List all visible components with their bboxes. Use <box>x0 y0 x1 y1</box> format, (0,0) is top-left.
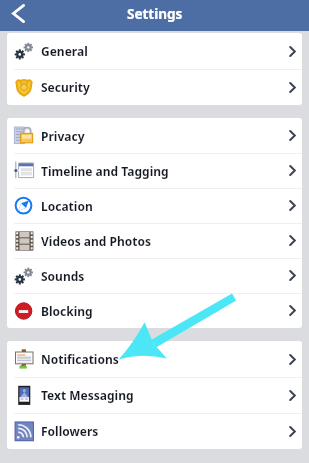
staticText: Sounds <box>41 268 85 284</box>
staticText: Notifications <box>41 351 119 367</box>
staticText: Timeline and Tagging <box>41 163 169 179</box>
button[interactable]: Location <box>7 188 302 223</box>
button[interactable]: Back <box>0 0 36 31</box>
staticText: Text Messaging <box>41 387 134 403</box>
button[interactable]: Followers <box>7 413 302 449</box>
staticText: Videos and Photos <box>41 233 151 249</box>
button[interactable]: Notifications <box>7 341 302 377</box>
staticText: Privacy <box>41 128 85 144</box>
staticText: Location <box>41 198 93 214</box>
staticText: Blocking <box>41 303 93 319</box>
button[interactable]: Text Messaging <box>7 377 302 413</box>
button[interactable]: Videos and Photos <box>7 223 302 258</box>
staticText: General <box>41 43 88 59</box>
button[interactable]: General <box>7 33 302 69</box>
button[interactable]: Sounds <box>7 258 302 293</box>
button[interactable]: Security <box>7 69 302 105</box>
staticText: Settings <box>127 5 183 23</box>
staticText: Followers <box>41 423 99 439</box>
button[interactable]: Blocking <box>7 293 302 328</box>
staticText: Security <box>41 79 90 95</box>
button[interactable]: Privacy <box>7 118 302 153</box>
button[interactable]: Timeline and Tagging <box>7 153 302 188</box>
